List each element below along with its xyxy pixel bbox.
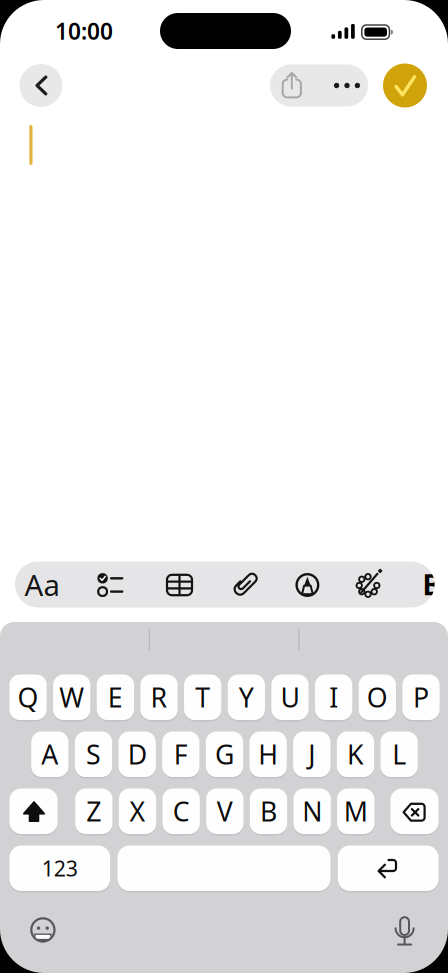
button[interactable]: Dictate [385,910,425,950]
button[interactable]: J [293,731,330,777]
staticText: X [129,793,145,829]
staticText: C [173,793,190,829]
button[interactable]: Attach [216,561,274,607]
staticText: I [329,679,338,715]
button[interactable]: B [250,788,287,834]
button[interactable]: I [315,674,352,720]
staticText: G [215,736,234,772]
staticText: U [280,679,299,715]
staticText: F [174,736,188,772]
button[interactable]: V [206,788,243,834]
staticText: E [108,679,123,715]
staticText: O [367,679,388,715]
staticText: 123 [42,854,78,882]
button[interactable]: Table [149,561,207,607]
button[interactable]: Format [13,561,71,607]
staticText: B [260,793,277,829]
button[interactable]: T [184,674,221,720]
button[interactable]: Back [19,64,62,107]
button[interactable]: Space [117,845,330,891]
staticText: T [195,679,210,715]
staticText: M [344,793,368,829]
button[interactable]: Z [75,788,112,834]
button[interactable]: Shift [9,788,58,834]
button[interactable]: A [31,731,68,777]
button[interactable]: Delete [390,788,439,834]
staticText: L [392,736,406,772]
staticText: N [302,793,322,829]
staticText: 10:00 [55,16,113,46]
staticText: S [86,736,101,772]
button[interactable]: F [162,731,199,777]
button[interactable]: D [118,731,156,777]
button[interactable]: More [320,64,368,106]
staticText: A [41,736,58,772]
button[interactable]: C [162,788,200,834]
staticText: P [413,679,429,715]
button[interactable]: N [293,788,331,834]
button[interactable]: Writing Tools [341,561,397,607]
staticText: H [258,736,278,772]
button[interactable]: L [380,731,418,777]
button[interactable]: Numbers [9,845,110,891]
button[interactable]: K [337,731,374,777]
button[interactable]: X [119,788,156,834]
button[interactable]: Emoji [23,910,63,950]
staticText: Z [86,793,101,829]
staticText: B [422,566,441,603]
staticText: J [308,736,315,772]
button[interactable]: R [140,674,178,720]
button[interactable]: U [271,674,309,720]
staticText: K [347,736,364,772]
button[interactable]: H [249,731,287,777]
button[interactable]: Markup [279,561,335,607]
button[interactable]: W [53,674,90,720]
staticText: W [59,679,84,715]
button[interactable]: S [75,731,112,777]
staticText: Y [239,679,254,715]
button[interactable]: Q [9,674,47,720]
staticText: Q [17,679,38,715]
staticText: V [217,793,233,829]
button[interactable]: M [337,788,374,834]
button[interactable]: O [359,674,396,720]
staticText: D [128,736,147,772]
button[interactable]: G [206,731,243,777]
staticText: Aa [24,565,59,604]
button[interactable]: Checklist [81,561,139,607]
staticText: R [150,679,167,715]
button[interactable]: E [97,674,134,720]
button[interactable]: Y [228,674,265,720]
button[interactable]: P [402,674,440,720]
button[interactable]: Share [270,64,318,106]
button[interactable]: Done [383,63,427,107]
button[interactable]: Return [338,845,439,891]
